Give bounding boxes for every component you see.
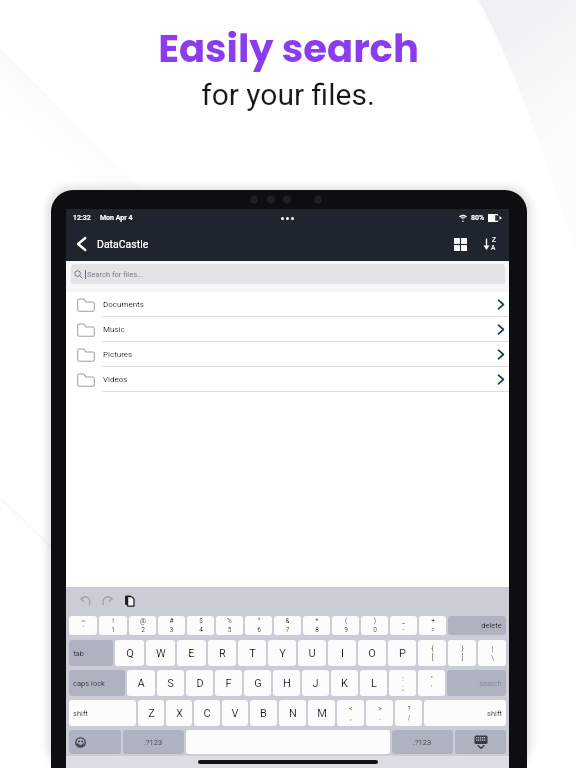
button[interactable]: K xyxy=(331,670,358,696)
button[interactable]: " ' xyxy=(418,670,445,696)
button[interactable]: S xyxy=(157,670,184,696)
staticText: V xyxy=(231,707,239,720)
button[interactable]: caps lock xyxy=(69,670,125,696)
button[interactable]: > . xyxy=(366,700,393,726)
button[interactable]: ~ ` xyxy=(69,616,97,635)
staticText: G xyxy=(254,677,262,690)
button[interactable]: Videos xyxy=(66,367,509,392)
button[interactable]: @ 2 xyxy=(129,616,156,635)
button[interactable]: Emoji keyboard xyxy=(69,730,121,754)
staticText: L xyxy=(371,677,377,690)
button[interactable]: { [ xyxy=(418,640,446,666)
staticText: F xyxy=(225,677,232,690)
staticText: B xyxy=(260,707,267,720)
button[interactable]: } ] xyxy=(448,640,476,666)
button[interactable]: & 7 xyxy=(274,616,301,635)
staticText: | \ xyxy=(491,645,494,662)
staticText: Pictures xyxy=(103,350,133,359)
button[interactable]: N xyxy=(279,700,306,726)
staticText: 12:32 xyxy=(73,214,91,222)
button[interactable]: Hide keyboard xyxy=(455,730,506,754)
button[interactable]: A xyxy=(127,670,155,696)
button[interactable]: R xyxy=(208,640,236,666)
staticText: < , xyxy=(349,705,353,722)
staticText: % 5 xyxy=(227,617,232,634)
staticText: Search for files... xyxy=(87,270,143,279)
button[interactable]: % 5 xyxy=(216,616,243,635)
staticText: O xyxy=(368,647,376,660)
staticText: T xyxy=(249,647,256,660)
button[interactable]: W xyxy=(146,640,175,666)
button[interactable]: : ; xyxy=(389,670,416,696)
staticText: @ 2 xyxy=(140,617,146,634)
staticText: & 7 xyxy=(285,617,290,634)
button[interactable]: Q xyxy=(115,640,144,666)
button[interactable]: B xyxy=(250,700,277,726)
button[interactable]: E xyxy=(177,640,206,666)
button[interactable]: Documents xyxy=(66,292,509,317)
staticText: ! 1 xyxy=(111,617,115,634)
staticText: search xyxy=(479,679,502,688)
button[interactable]: Music xyxy=(66,317,509,342)
button[interactable]: tab xyxy=(69,640,113,666)
staticText: # 3 xyxy=(169,617,174,634)
staticText: J xyxy=(312,677,319,690)
staticText: } ] xyxy=(461,645,464,662)
button[interactable]: shift xyxy=(69,700,136,726)
staticText: { [ xyxy=(431,645,434,662)
button[interactable]: H xyxy=(273,670,300,696)
button[interactable]: I xyxy=(328,640,356,666)
button[interactable]: ? / xyxy=(395,700,422,726)
button[interactable]: J xyxy=(302,670,329,696)
button[interactable]: Redo xyxy=(100,593,114,607)
button[interactable]: ) 0 xyxy=(361,616,388,635)
button[interactable]: L xyxy=(360,670,387,696)
button[interactable]: $ 4 xyxy=(187,616,214,635)
staticText: Videos xyxy=(103,375,128,384)
button[interactable]: shift xyxy=(424,700,506,726)
button[interactable]: ! 1 xyxy=(99,616,127,635)
button[interactable]: delete xyxy=(448,616,506,635)
staticText: ) 0 xyxy=(373,617,377,634)
staticText: shift xyxy=(487,709,502,718)
button[interactable]: Paste xyxy=(122,593,136,607)
button[interactable]: Back xyxy=(71,234,91,254)
button[interactable]: G xyxy=(244,670,271,696)
button[interactable]: Pictures xyxy=(66,342,509,367)
button[interactable]: O xyxy=(358,640,386,666)
button[interactable]: _ - xyxy=(390,616,417,635)
button[interactable]: Grid view xyxy=(449,233,471,255)
staticText: E xyxy=(188,647,195,660)
button[interactable]: search xyxy=(447,670,506,696)
staticText: Documents xyxy=(103,300,144,309)
button[interactable]: D xyxy=(186,670,213,696)
button[interactable]: ( 9 xyxy=(332,616,359,635)
staticText: H xyxy=(283,677,291,690)
button[interactable]: Y xyxy=(268,640,296,666)
staticText: ~ ` xyxy=(81,617,86,634)
button[interactable]: V xyxy=(222,700,248,726)
staticText: U xyxy=(308,647,316,660)
button[interactable]: M xyxy=(308,700,335,726)
button[interactable]: .?123 xyxy=(392,730,453,754)
button[interactable]: T xyxy=(238,640,266,666)
button[interactable]: | \ xyxy=(478,640,506,666)
button[interactable]: Sort Z to A xyxy=(478,233,500,255)
button[interactable]: P xyxy=(388,640,416,666)
button[interactable]: ^ 6 xyxy=(245,616,272,635)
staticText: P xyxy=(399,647,406,660)
button[interactable]: F xyxy=(215,670,242,696)
button[interactable]: .?123 xyxy=(123,730,184,754)
button[interactable]: Undo xyxy=(78,593,92,607)
button[interactable]: * 8 xyxy=(303,616,330,635)
button[interactable]: U xyxy=(298,640,326,666)
button[interactable]: # 3 xyxy=(158,616,185,635)
button[interactable]: X xyxy=(166,700,192,726)
button[interactable]: < , xyxy=(337,700,364,726)
button[interactable]: C xyxy=(194,700,220,726)
button[interactable]: Search for files... xyxy=(71,264,505,284)
button[interactable]: Z xyxy=(138,700,164,726)
button[interactable]: + = xyxy=(419,616,446,635)
staticText: for your files. xyxy=(201,77,375,112)
